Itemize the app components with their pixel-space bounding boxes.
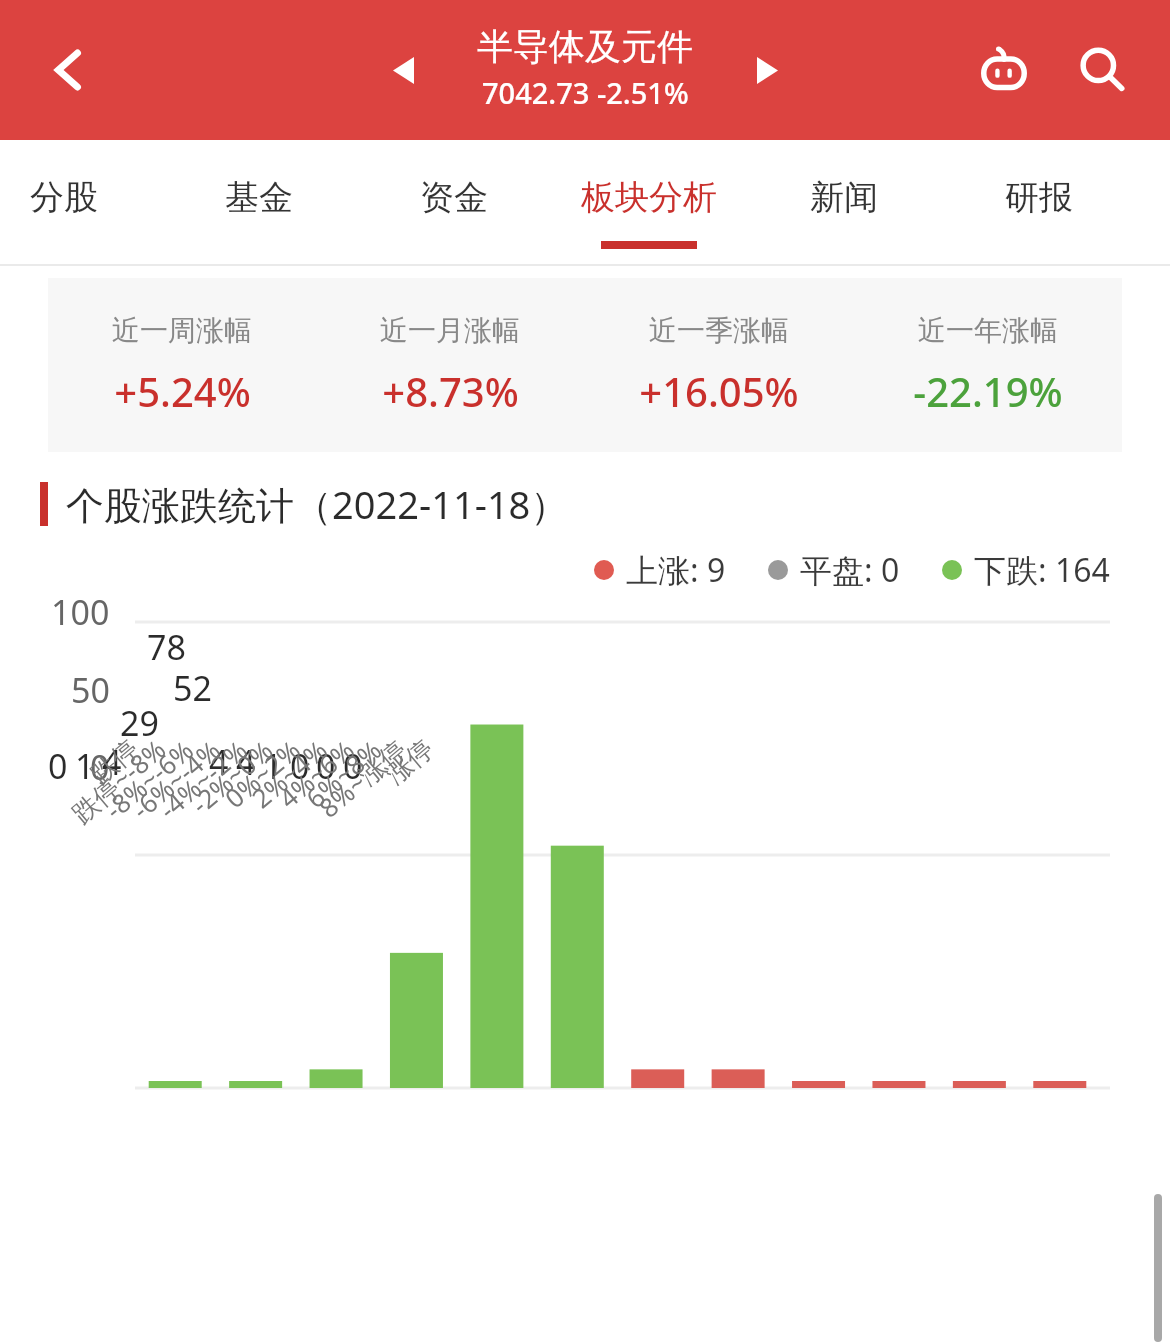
staticText: 52	[173, 665, 212, 711]
staticText: 1	[75, 743, 95, 789]
staticText: 基金	[225, 176, 293, 219]
staticText: 跌停	[84, 732, 145, 791]
staticText: 近一季涨幅	[649, 313, 789, 348]
staticText: 跌停~-8%	[64, 731, 173, 831]
staticText: 0	[48, 743, 68, 789]
staticText: 板块分析	[581, 176, 717, 219]
staticText: 4	[209, 739, 229, 785]
staticText: 平盘: 0	[800, 548, 900, 592]
staticText: 分股	[30, 176, 98, 219]
staticText: 近一周涨幅	[112, 313, 252, 348]
staticText: 0	[343, 743, 363, 789]
staticText: 涨停	[379, 732, 440, 791]
staticText: 近一年涨幅	[918, 313, 1058, 348]
staticText: 6%~8%	[298, 732, 388, 815]
staticText: 0%~2%	[217, 732, 307, 815]
staticText: +8.73%	[382, 364, 519, 418]
staticText: 29	[120, 700, 159, 746]
staticText: 2%~4%	[244, 732, 334, 815]
staticText: 4%~6%	[271, 732, 361, 815]
button[interactable]: 板块分析	[551, 140, 746, 266]
staticText: 新闻	[810, 176, 878, 219]
staticText: 50	[71, 667, 110, 713]
staticText: 个股涨跌统计（2022-11-18）	[66, 478, 569, 530]
button[interactable]: 资金	[356, 140, 551, 266]
staticText: -6%~-4%	[124, 732, 227, 826]
staticText: 78	[147, 624, 186, 670]
staticText: 研报	[1005, 176, 1073, 219]
staticText: 0	[90, 744, 110, 790]
staticText: 100	[51, 589, 110, 635]
button[interactable]: Next sector	[738, 41, 796, 99]
button[interactable]: Back	[34, 34, 106, 106]
staticText: 0	[290, 743, 310, 789]
button[interactable]: 研报	[941, 140, 1136, 266]
staticText: 7042.73 -2.51%	[482, 73, 689, 112]
staticText: +16.05%	[639, 364, 799, 418]
staticText: 4	[102, 739, 122, 785]
button[interactable]: Assistant	[966, 32, 1042, 108]
button[interactable]: Search	[1064, 32, 1140, 108]
button[interactable]: 基金	[161, 140, 356, 266]
button[interactable]: Previous sector	[374, 41, 432, 99]
staticText: 近一月涨幅	[380, 313, 520, 348]
staticText: 资金	[420, 176, 488, 219]
staticText: 下跌: 164	[974, 548, 1110, 592]
staticText: 0	[316, 743, 336, 789]
staticText: 8%~涨停	[311, 731, 414, 825]
button[interactable]: 新闻	[746, 140, 941, 266]
staticText: 1	[263, 743, 283, 789]
staticText: 半导体及元件	[477, 24, 693, 69]
staticText: +5.24%	[114, 364, 251, 418]
staticText: -4%~-2%	[151, 732, 254, 826]
staticText: -8%~-6%	[97, 732, 200, 826]
staticText: 上涨: 9	[626, 548, 726, 592]
button[interactable]: 分股	[0, 140, 161, 266]
staticText: -22.19%	[913, 364, 1063, 418]
staticText: 4	[236, 739, 256, 785]
staticText: -2%~0%	[183, 732, 280, 821]
